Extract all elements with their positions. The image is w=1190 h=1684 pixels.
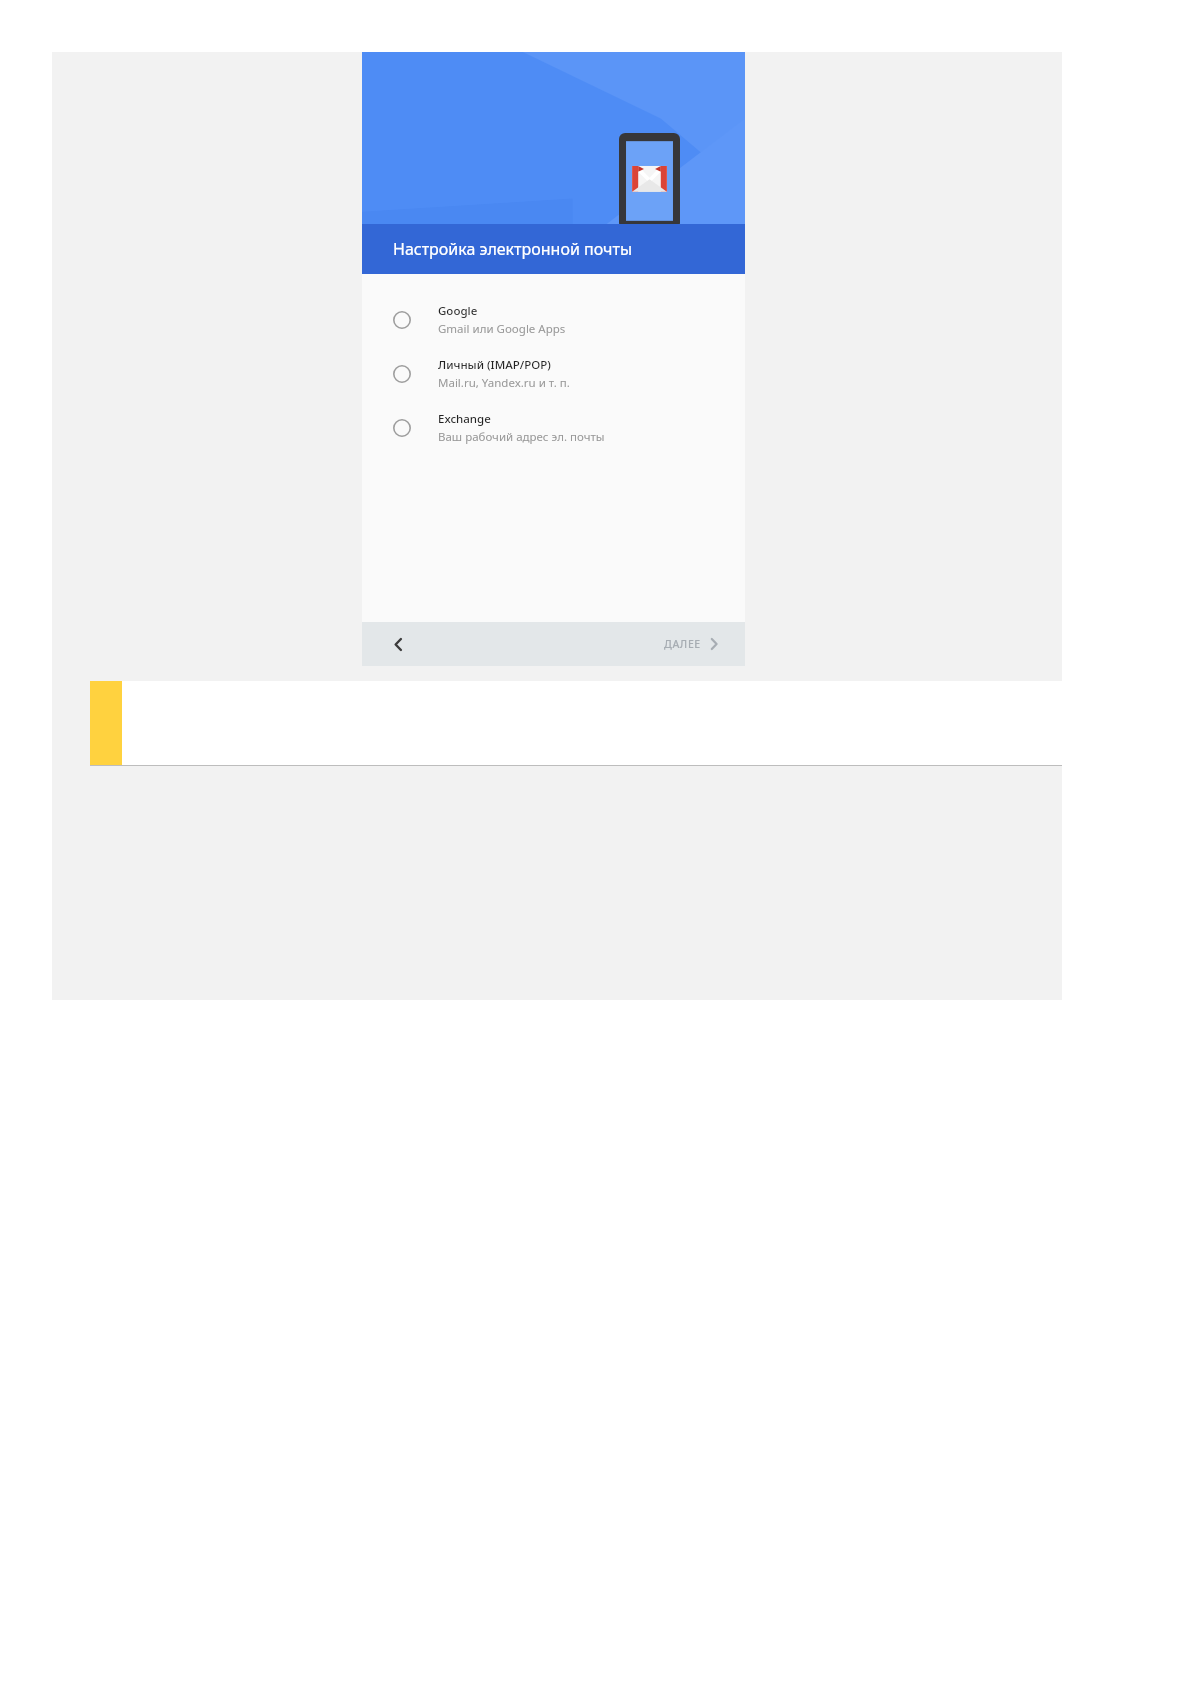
button[interactable]: Назад	[384, 630, 412, 658]
button[interactable]: ДАЛЕЕ	[660, 631, 723, 657]
staticText: Mail.ru, Yandex.ru и т. п.	[438, 375, 570, 391]
staticText: Gmail или Google Apps	[438, 321, 566, 337]
staticText: Личный (IMAP/POP)	[438, 357, 551, 373]
button[interactable]: Exchange	[362, 401, 745, 455]
staticText: Google	[438, 303, 478, 319]
button[interactable]: Google	[362, 293, 745, 347]
staticText: ДАЛЕЕ	[664, 637, 701, 651]
staticText: Ваш рабочий адрес эл. почты	[438, 429, 605, 445]
staticText: Настройка электронной почты	[393, 238, 633, 260]
staticText: Exchange	[438, 411, 491, 427]
button[interactable]: Личный (IMAP/POP)	[362, 347, 745, 401]
